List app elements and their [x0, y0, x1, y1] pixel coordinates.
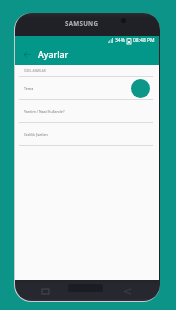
staticText: ÖZEL AYARLAR [24, 69, 46, 73]
button[interactable]: Yardım / Nasıl Kullanılır? [15, 100, 159, 122]
staticText: 08:48 PM [133, 37, 155, 44]
button[interactable]: Tema [15, 77, 159, 99]
staticText: Ayarlar [38, 49, 69, 61]
staticText: Yardım / Nasıl Kullanılır? [24, 109, 65, 114]
button[interactable]: Back [22, 49, 33, 60]
staticText: 34% [115, 37, 125, 44]
staticText: SAMSUNG [65, 19, 99, 27]
button[interactable]: Back [124, 289, 131, 294]
button[interactable]: Recents [42, 289, 49, 294]
staticText: Tema [24, 86, 34, 91]
button[interactable]: Gizlilik Şartları [15, 123, 159, 145]
staticText: Gizlilik Şartları [24, 132, 48, 137]
